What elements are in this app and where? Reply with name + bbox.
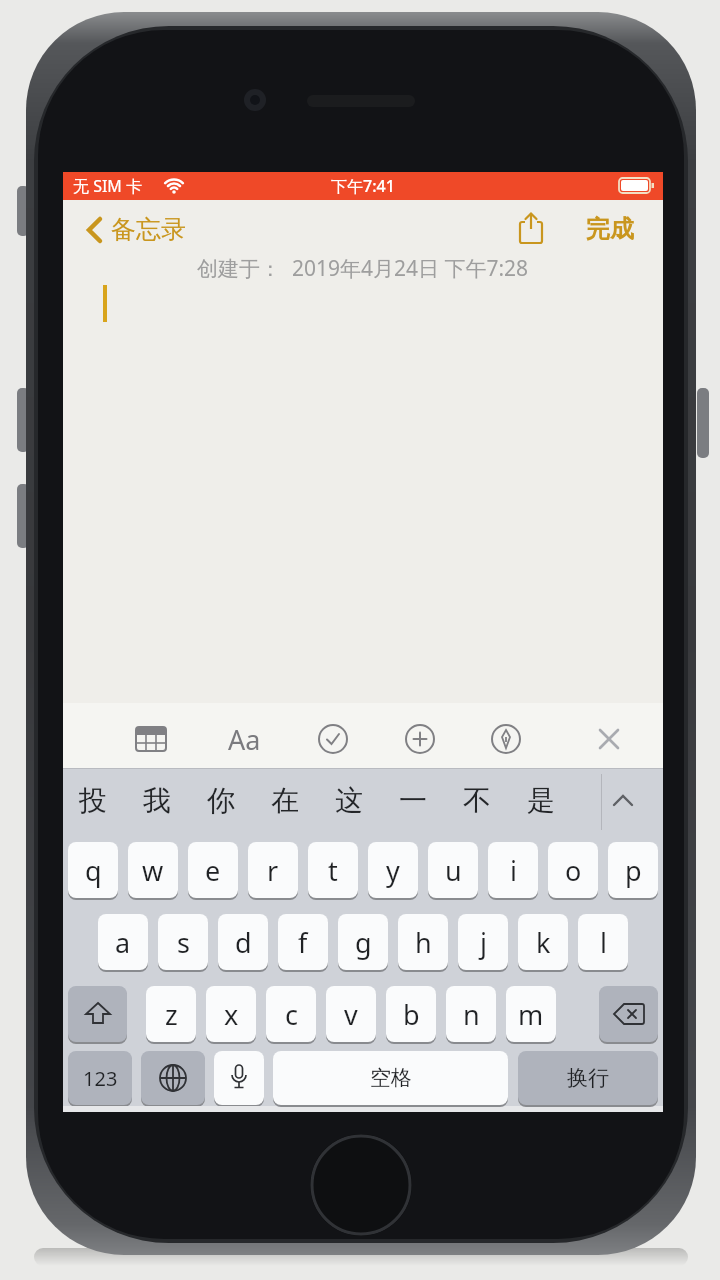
- staticText: j: [480, 924, 487, 961]
- button[interactable]: a: [98, 914, 148, 970]
- staticText: 在: [271, 783, 299, 818]
- staticText: b: [403, 996, 420, 1033]
- staticText: 换行: [567, 1065, 609, 1091]
- staticText: 不: [463, 783, 491, 818]
- button[interactable]: 是: [513, 771, 569, 829]
- staticText: e: [205, 852, 221, 889]
- button[interactable]: Aa: [221, 717, 267, 761]
- button[interactable]: q: [68, 842, 118, 898]
- staticText: 是: [527, 783, 555, 818]
- staticText: i: [510, 852, 517, 889]
- staticText: l: [600, 924, 607, 961]
- staticText: y: [386, 852, 400, 889]
- button[interactable]: i: [488, 842, 538, 898]
- button[interactable]: [598, 771, 648, 829]
- staticText: z: [165, 996, 178, 1033]
- button[interactable]: [484, 717, 528, 761]
- button[interactable]: b: [386, 986, 436, 1042]
- button[interactable]: [310, 1134, 412, 1236]
- staticText: 无 SIM 卡: [73, 175, 143, 197]
- staticText: v: [344, 996, 358, 1033]
- button[interactable]: 我: [129, 771, 185, 829]
- staticText: 我: [143, 783, 171, 818]
- button[interactable]: w: [128, 842, 178, 898]
- button[interactable]: 空格: [273, 1051, 508, 1105]
- button[interactable]: 备忘录: [81, 208, 261, 250]
- staticText: 这: [335, 783, 363, 818]
- button[interactable]: v: [326, 986, 376, 1042]
- staticText: s: [177, 924, 190, 961]
- button[interactable]: 投: [65, 771, 121, 829]
- staticText: 123: [83, 1065, 118, 1092]
- button[interactable]: [214, 1051, 264, 1105]
- button[interactable]: h: [398, 914, 448, 970]
- staticText: 你: [207, 783, 235, 818]
- button[interactable]: 在: [257, 771, 313, 829]
- staticText: 投: [79, 783, 107, 818]
- staticText: c: [285, 996, 298, 1033]
- button[interactable]: l: [578, 914, 628, 970]
- button[interactable]: k: [518, 914, 568, 970]
- button[interactable]: r: [248, 842, 298, 898]
- staticText: r: [267, 852, 279, 889]
- button[interactable]: t: [308, 842, 358, 898]
- staticText: k: [536, 924, 551, 961]
- button[interactable]: u: [428, 842, 478, 898]
- button[interactable]: [587, 717, 631, 761]
- button[interactable]: [398, 717, 442, 761]
- button[interactable]: 换行: [518, 1051, 658, 1105]
- staticText: o: [565, 852, 582, 889]
- staticText: 一: [399, 783, 427, 818]
- button[interactable]: g: [338, 914, 388, 970]
- button[interactable]: 这: [321, 771, 377, 829]
- button[interactable]: 一: [385, 771, 441, 829]
- staticText: 下午7:41: [331, 175, 395, 197]
- staticText: a: [115, 924, 131, 961]
- staticText: 备忘录: [111, 214, 186, 245]
- button[interactable]: 你: [193, 771, 249, 829]
- button[interactable]: [129, 717, 173, 761]
- button[interactable]: o: [548, 842, 598, 898]
- button[interactable]: j: [458, 914, 508, 970]
- button[interactable]: f: [278, 914, 328, 970]
- button[interactable]: e: [188, 842, 238, 898]
- staticText: h: [415, 924, 432, 961]
- button[interactable]: p: [608, 842, 658, 898]
- staticText: 完成: [586, 214, 634, 244]
- button[interactable]: d: [218, 914, 268, 970]
- staticText: m: [518, 996, 544, 1033]
- button[interactable]: y: [368, 842, 418, 898]
- staticText: g: [355, 924, 372, 961]
- staticText: q: [85, 852, 102, 889]
- staticText: t: [328, 852, 338, 889]
- button[interactable]: [513, 206, 549, 250]
- button[interactable]: m: [506, 986, 556, 1042]
- button[interactable]: [311, 717, 355, 761]
- staticText: Aa: [228, 721, 261, 758]
- button[interactable]: 完成: [575, 208, 645, 250]
- staticText: f: [298, 924, 308, 961]
- button[interactable]: x: [206, 986, 256, 1042]
- staticText: w: [142, 852, 164, 889]
- button[interactable]: 不: [449, 771, 505, 829]
- staticText: 创建于： 2019年4月24日 下午7:28: [197, 254, 529, 283]
- button[interactable]: c: [266, 986, 316, 1042]
- staticText: d: [235, 924, 252, 961]
- staticText: n: [463, 996, 480, 1033]
- button[interactable]: 123: [68, 1051, 132, 1105]
- button[interactable]: n: [446, 986, 496, 1042]
- button[interactable]: [599, 986, 658, 1042]
- button[interactable]: [141, 1051, 205, 1105]
- staticText: p: [625, 852, 642, 889]
- button[interactable]: [68, 986, 127, 1042]
- staticText: u: [445, 852, 462, 889]
- button[interactable]: z: [146, 986, 196, 1042]
- staticText: 空格: [370, 1065, 412, 1091]
- staticText: x: [224, 996, 239, 1033]
- button[interactable]: s: [158, 914, 208, 970]
